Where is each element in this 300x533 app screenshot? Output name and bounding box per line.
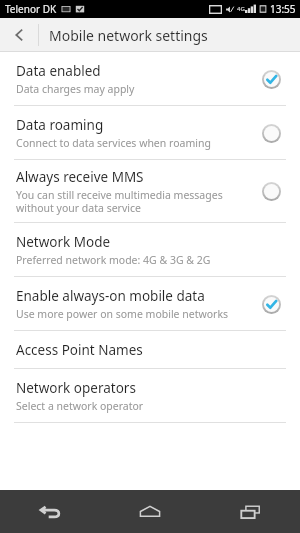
staticText: Data charges may apply: [16, 82, 135, 96]
staticText: You can still receive multimedia message…: [16, 188, 223, 215]
staticText: Mobile network settings: [49, 26, 208, 45]
button[interactable]: Back: [0, 490, 100, 533]
button[interactable]: Always receive MMS, off: [256, 176, 286, 206]
button[interactable]: Back: [0, 18, 38, 52]
staticText: 13:55: [270, 2, 296, 16]
staticText: Data enabled: [16, 62, 101, 80]
staticText: Access Point Names: [16, 341, 143, 359]
button[interactable]: Data enabled: [0, 52, 300, 105]
button[interactable]: Network Mode: [0, 223, 300, 276]
staticText: 4G: [237, 5, 245, 13]
button[interactable]: Home: [100, 490, 200, 533]
staticText: Connect to data services when roaming: [16, 136, 211, 150]
button[interactable]: Network operators: [0, 369, 300, 422]
button[interactable]: Access Point Names: [0, 331, 300, 368]
staticText: Telenor DK: [5, 2, 57, 16]
staticText: Select a network operator: [16, 399, 144, 413]
button[interactable]: Data enabled, on: [256, 64, 286, 94]
button[interactable]: Data roaming: [0, 106, 300, 159]
button[interactable]: Enable always-on mobile data: [0, 277, 300, 330]
button[interactable]: Enable always-on mobile data, on: [256, 289, 286, 319]
staticText: Network operators: [16, 379, 136, 397]
button[interactable]: Data roaming, off: [256, 118, 286, 148]
staticText: Enable always-on mobile data: [16, 287, 205, 305]
staticText: Data roaming: [16, 116, 104, 134]
staticText: Use more power on some mobile networks: [16, 307, 229, 321]
button[interactable]: Always receive MMS: [0, 160, 300, 222]
staticText: Always receive MMS: [16, 168, 144, 186]
staticText: Network Mode: [16, 233, 111, 251]
staticText: Preferred network mode: 4G & 3G & 2G: [16, 253, 211, 267]
button[interactable]: Recent apps: [200, 490, 300, 533]
